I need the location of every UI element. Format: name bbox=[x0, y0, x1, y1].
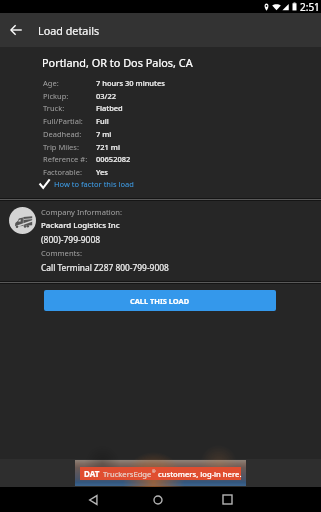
staticText: How to factor this load bbox=[54, 179, 134, 189]
staticText: Pickup: bbox=[43, 91, 69, 101]
staticText: ® bbox=[152, 469, 156, 475]
staticText: Reference #: bbox=[43, 154, 88, 164]
button[interactable]: Back bbox=[80, 487, 106, 512]
button[interactable]: Recent apps bbox=[214, 487, 240, 512]
staticText: Age: bbox=[43, 78, 59, 88]
staticText: Comments: bbox=[41, 248, 82, 258]
staticText: Truck: bbox=[43, 103, 65, 113]
staticText: Packard Logistics Inc bbox=[41, 220, 120, 231]
staticText: customers, log-in here. bbox=[158, 469, 242, 479]
staticText: 7 hours 30 minutes bbox=[96, 78, 165, 88]
staticText: 00652082 bbox=[96, 154, 131, 164]
staticText: TruckersEdge bbox=[103, 469, 152, 479]
staticText: 721 mi bbox=[96, 142, 120, 152]
button[interactable]: DAT TruckersEdge advertisement bbox=[75, 460, 246, 486]
staticText: Full bbox=[96, 116, 109, 126]
button[interactable]: Home bbox=[145, 487, 171, 512]
staticText: Call Terminal Z287 800-799-9008 bbox=[41, 262, 169, 273]
staticText: CALL THIS LOAD bbox=[130, 296, 190, 306]
staticText: Load details bbox=[38, 23, 100, 38]
staticText: Deadhead: bbox=[43, 129, 82, 139]
staticText: Yes bbox=[96, 167, 108, 177]
staticText: Factorable: bbox=[43, 167, 82, 177]
staticText: Company Information: bbox=[41, 207, 122, 217]
staticText: 2:51 bbox=[300, 0, 320, 13]
staticText: Full/Partial: bbox=[43, 116, 83, 126]
staticText: 03/22 bbox=[96, 91, 117, 101]
button[interactable]: How to factor this load bbox=[38, 178, 134, 190]
button[interactable]: Back bbox=[0, 14, 32, 46]
button[interactable]: CALL THIS LOAD bbox=[44, 290, 276, 311]
staticText: Trip Miles: bbox=[43, 142, 79, 152]
staticText: Flatbed bbox=[96, 103, 123, 113]
staticText: DAT bbox=[84, 468, 100, 479]
staticText: 7 mi bbox=[96, 129, 112, 139]
staticText: (800)-799-9008 bbox=[41, 234, 101, 246]
staticText: Portland, OR to Dos Palos, CA bbox=[42, 55, 193, 70]
